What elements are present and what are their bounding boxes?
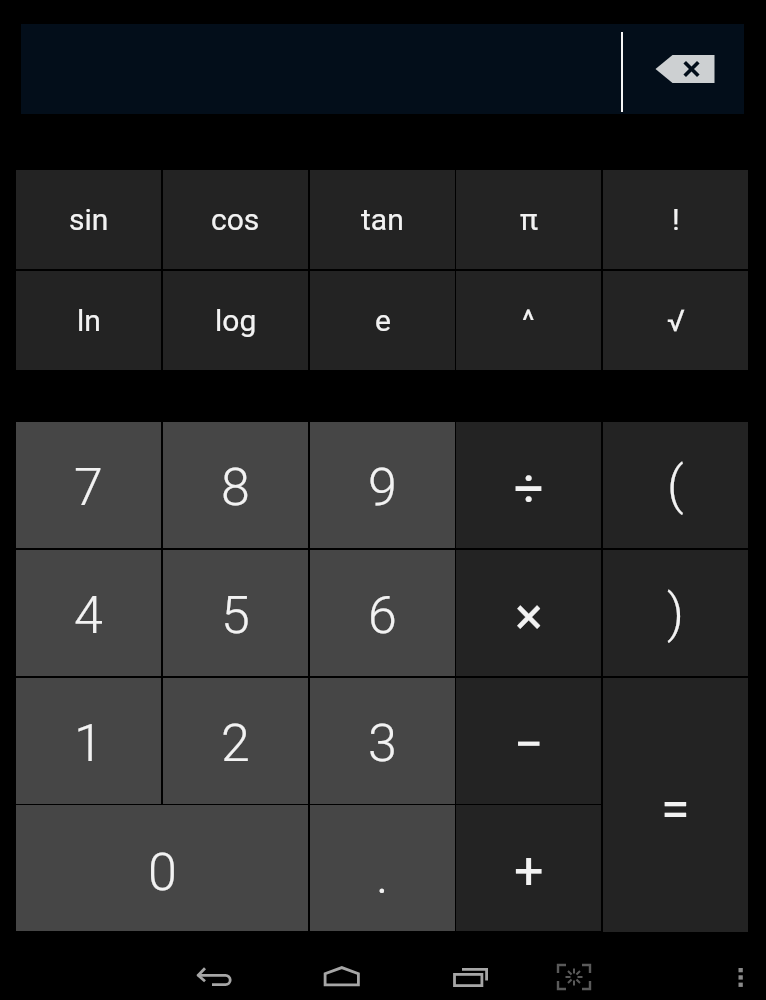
button[interactable]: 5 (162, 549, 309, 677)
button[interactable]: + (455, 804, 602, 932)
button[interactable]: ( (602, 421, 749, 549)
staticText: − (514, 714, 544, 775)
staticText: 0 (148, 842, 177, 903)
button[interactable] (546, 952, 602, 998)
staticText: ln (77, 303, 101, 338)
button[interactable]: . (309, 804, 456, 932)
button[interactable]: × (455, 549, 602, 677)
button[interactable] (180, 952, 250, 998)
staticText: 8 (221, 457, 250, 518)
button[interactable]: ! (602, 169, 749, 270)
button[interactable]: − (455, 677, 602, 805)
staticText: ÷ (514, 458, 544, 519)
staticText: + (514, 841, 544, 902)
button[interactable]: sin (15, 169, 162, 270)
button[interactable]: 3 (309, 677, 456, 805)
staticText: 2 (221, 713, 250, 774)
staticText: ^ (522, 303, 535, 338)
button[interactable] (308, 952, 376, 998)
staticText: 4 (74, 585, 103, 646)
button[interactable]: 2 (162, 677, 309, 805)
button[interactable]: tan (309, 169, 456, 270)
staticText: 3 (368, 713, 397, 774)
staticText: cos (211, 202, 260, 237)
staticText: 7 (74, 457, 103, 518)
button[interactable]: 8 (162, 421, 309, 549)
staticText: 6 (368, 585, 397, 646)
button[interactable]: ÷ (455, 421, 602, 549)
staticText: e (375, 303, 391, 338)
button[interactable]: ) (602, 549, 749, 677)
staticText: tan (361, 202, 404, 237)
button[interactable]: 7 (15, 421, 162, 549)
staticText: 1 (74, 713, 103, 774)
staticText: √ (667, 303, 685, 338)
staticText: × (515, 586, 543, 647)
staticText: = (661, 779, 690, 840)
button[interactable]: 6 (309, 549, 456, 677)
button[interactable]: 0 (15, 804, 309, 932)
button[interactable]: 4 (15, 549, 162, 677)
button[interactable]: 1 (15, 677, 162, 805)
button[interactable] (440, 952, 506, 998)
button[interactable]: √ (602, 270, 749, 371)
staticText: log (215, 303, 257, 338)
button[interactable]: ^ (455, 270, 602, 371)
button[interactable]: π (455, 169, 602, 270)
button[interactable] (623, 24, 744, 114)
staticText: π (520, 202, 538, 237)
staticText: . (376, 845, 389, 906)
button[interactable]: = (602, 677, 749, 933)
staticText: sin (69, 202, 109, 237)
button[interactable]: cos (162, 169, 309, 270)
button[interactable]: e (309, 270, 456, 371)
staticText: 5 (221, 585, 250, 646)
button[interactable] (722, 952, 762, 998)
button[interactable]: log (162, 270, 309, 371)
staticText: ) (667, 583, 684, 644)
button[interactable]: 9 (309, 421, 456, 549)
button[interactable]: ln (15, 270, 162, 371)
staticText: ( (667, 455, 684, 516)
staticText: 9 (368, 457, 397, 518)
staticText: ! (672, 202, 680, 237)
